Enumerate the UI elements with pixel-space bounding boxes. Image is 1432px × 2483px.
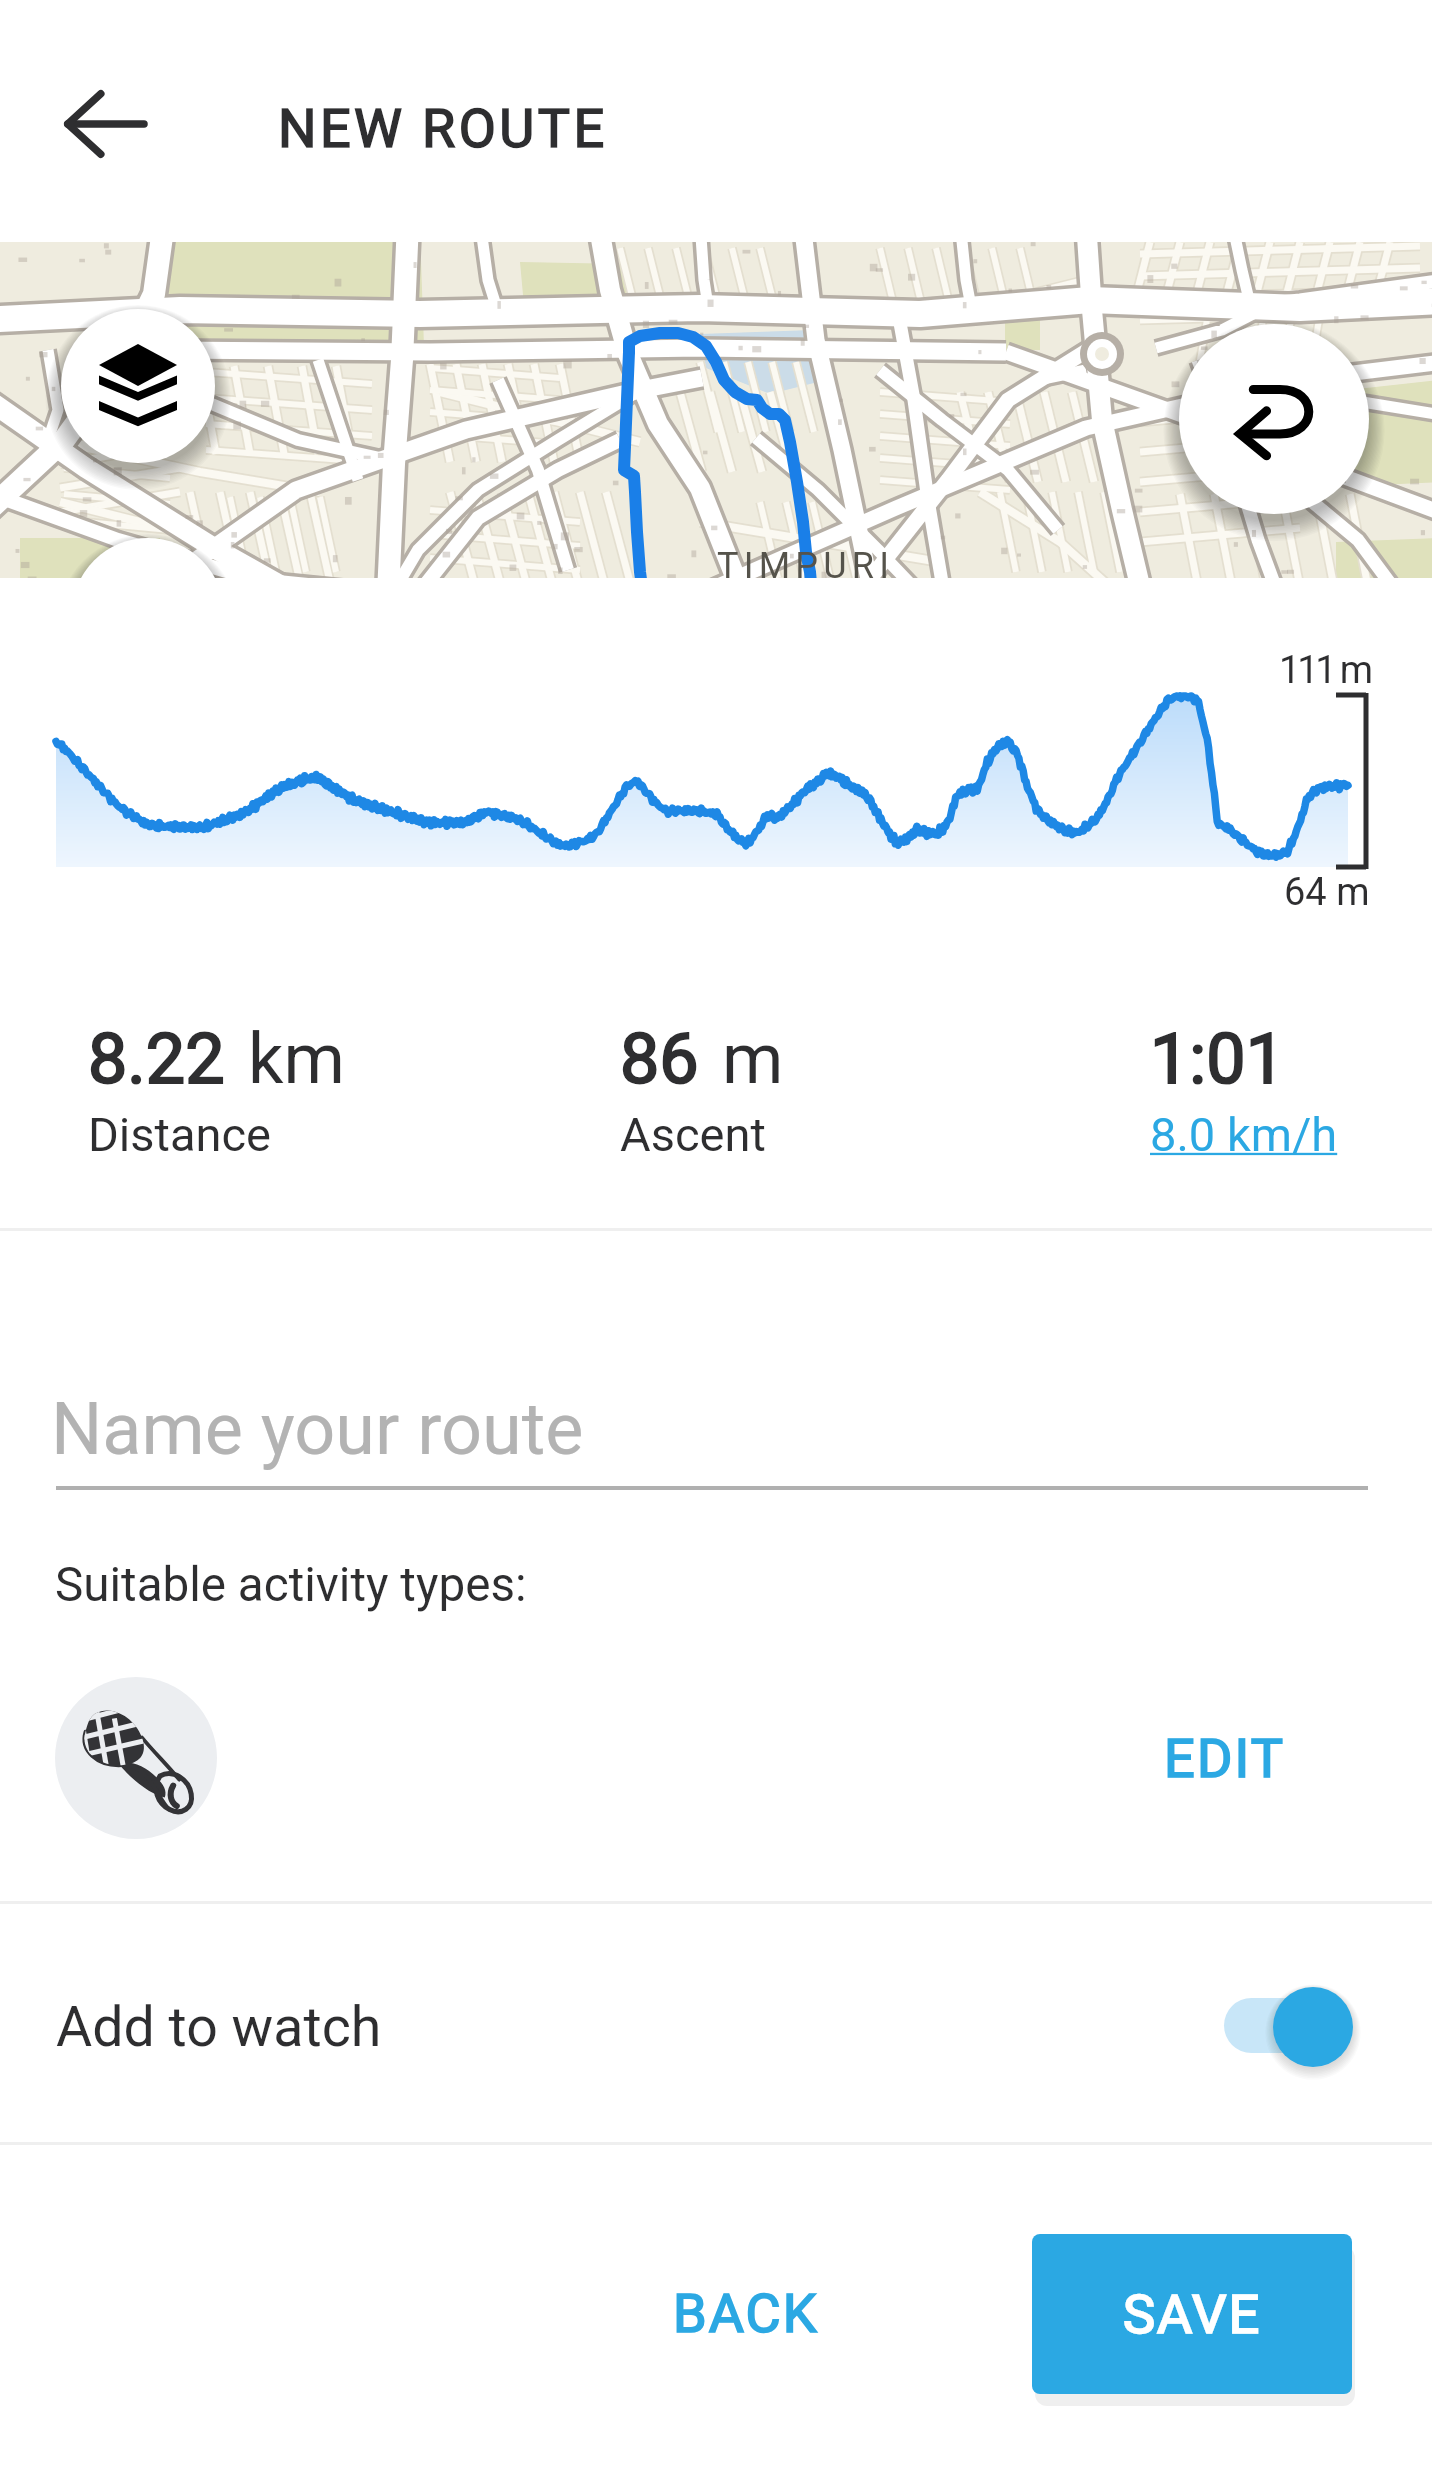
button[interactable]: Running activity — [55, 1677, 217, 1839]
staticText: Ascent — [620, 1107, 766, 1162]
staticText: 64 m — [1284, 870, 1370, 915]
staticText: BACK — [673, 2282, 819, 2345]
button[interactable]: Map layers — [61, 309, 215, 463]
staticText: EDIT — [1164, 1727, 1286, 1790]
staticText: Add to watch — [56, 1995, 382, 2060]
button[interactable]: BACK — [616, 2233, 876, 2393]
staticText: SAVE — [1123, 2283, 1262, 2346]
button[interactable]: Center map — [72, 538, 224, 578]
button[interactable]: Reverse route — [1179, 324, 1369, 514]
staticText: km — [248, 1018, 345, 1100]
staticText: Distance — [88, 1107, 271, 1162]
staticText: 8.22 — [88, 1018, 225, 1100]
button[interactable]: EDIT — [1108, 1700, 1342, 1816]
staticText: 111 m — [1279, 648, 1370, 693]
button[interactable]: Back — [44, 64, 164, 184]
button[interactable]: SAVE — [1032, 2234, 1352, 2394]
staticText: Name your route — [51, 1387, 584, 1471]
staticText: m — [722, 1018, 784, 1100]
button[interactable]: 8.0 km/h — [1150, 1107, 1338, 1162]
staticText: Suitable activity types: — [55, 1557, 527, 1613]
button[interactable]: Name your route — [51, 1370, 1371, 1494]
staticText: TIMPURI — [717, 545, 895, 578]
staticText: 1:01 — [1150, 1018, 1285, 1100]
button[interactable]: Add to watch — [0, 1904, 1432, 2143]
staticText: 86 — [620, 1018, 699, 1100]
staticText: NEW ROUTE — [278, 97, 608, 160]
